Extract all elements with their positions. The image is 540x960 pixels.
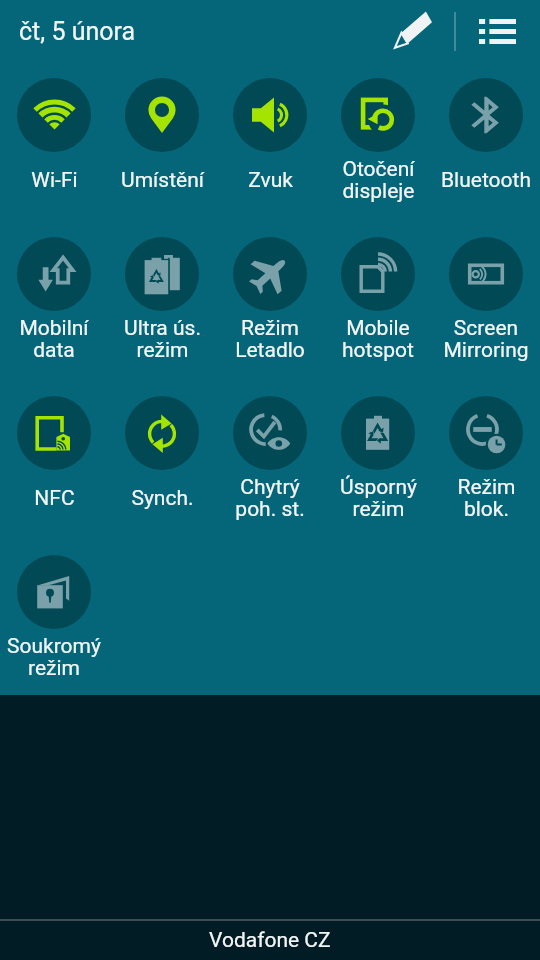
button[interactable]: Zvuk [216,62,324,221]
button[interactable]: Mobile hotspot [324,221,432,380]
button[interactable]: Režim blok. [432,380,540,539]
staticText: Umístění [121,168,204,193]
staticText: Screen Mirroring [443,316,529,363]
button[interactable]: Úsporný režim [324,380,432,539]
button[interactable]: Edit quick settings [380,4,446,56]
staticText: Soukromý režim [7,634,101,681]
button[interactable]: Soukromý režim [0,539,108,695]
button[interactable]: Wi-Fi [0,62,108,221]
staticText: Režim blok. [457,475,516,522]
button[interactable]: Show all settings [464,0,530,62]
staticText: Mobilní data [19,316,89,363]
staticText: Ultra ús. režim [124,316,201,363]
staticText: NFC [34,486,75,511]
button[interactable]: Mobilní data [0,221,108,380]
staticText: Mobile hotspot [342,316,414,363]
staticText: Synch. [131,486,194,511]
button[interactable]: Bluetooth [432,62,540,221]
button[interactable]: Synch. [108,380,216,539]
staticText: Úsporný režim [340,475,417,522]
button[interactable]: Screen Mirroring [432,221,540,380]
staticText: Otočení displeje [342,157,415,204]
button[interactable]: Režim Letadlo [216,221,324,380]
button[interactable]: NFC [0,380,108,539]
staticText: čt, 5 února [19,17,136,46]
staticText: Bluetooth [441,168,531,193]
staticText: Vodafone CZ [209,928,331,953]
staticText: Chytrý poh. st. [235,475,305,522]
staticText: Zvuk [248,168,293,193]
staticText: Režim Letadlo [235,316,305,363]
button[interactable]: Ultra ús. režim [108,221,216,380]
button[interactable]: Otočení displeje [324,62,432,221]
button[interactable]: Chytrý poh. st. [216,380,324,539]
staticText: Wi-Fi [31,168,78,193]
button[interactable]: Umístění [108,62,216,221]
